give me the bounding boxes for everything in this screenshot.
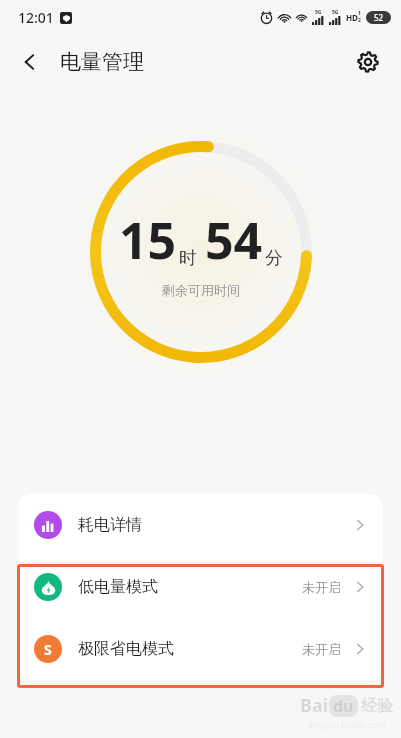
staticText: 5G bbox=[332, 9, 339, 16]
staticText: Bai bbox=[300, 693, 329, 718]
button[interactable]: Back bbox=[8, 40, 52, 84]
staticText: 电量管理 bbox=[60, 49, 144, 75]
button[interactable]: 低电量模式 bbox=[18, 556, 383, 618]
staticText: 54 bbox=[205, 206, 263, 274]
button[interactable]: Settings bbox=[347, 41, 389, 83]
staticText: HD bbox=[346, 12, 358, 23]
staticText: 剩余可用时间 bbox=[162, 282, 240, 298]
staticText: 15 bbox=[119, 206, 177, 274]
staticText: 时 bbox=[179, 247, 197, 270]
button[interactable]: 耗电详情 bbox=[18, 494, 383, 556]
staticText: 12:01 bbox=[18, 8, 54, 27]
button[interactable]: S bbox=[18, 618, 383, 680]
staticText: 经验 bbox=[361, 696, 393, 716]
staticText: du bbox=[333, 695, 354, 717]
staticText: S bbox=[44, 640, 52, 659]
staticText: 极限省电模式 bbox=[78, 639, 174, 659]
staticText: 未开启 bbox=[302, 579, 341, 595]
staticText: 2 bbox=[358, 17, 361, 24]
staticText: 耗电详情 bbox=[78, 515, 142, 535]
staticText: 未开启 bbox=[302, 641, 341, 657]
staticText: 5G bbox=[315, 9, 322, 16]
staticText: 1 bbox=[358, 10, 361, 17]
staticText: 分 bbox=[265, 247, 283, 270]
staticText: 52 bbox=[374, 12, 384, 23]
staticText: 低电量模式 bbox=[78, 577, 158, 597]
staticText: jingyan.baidu.com bbox=[308, 718, 386, 730]
